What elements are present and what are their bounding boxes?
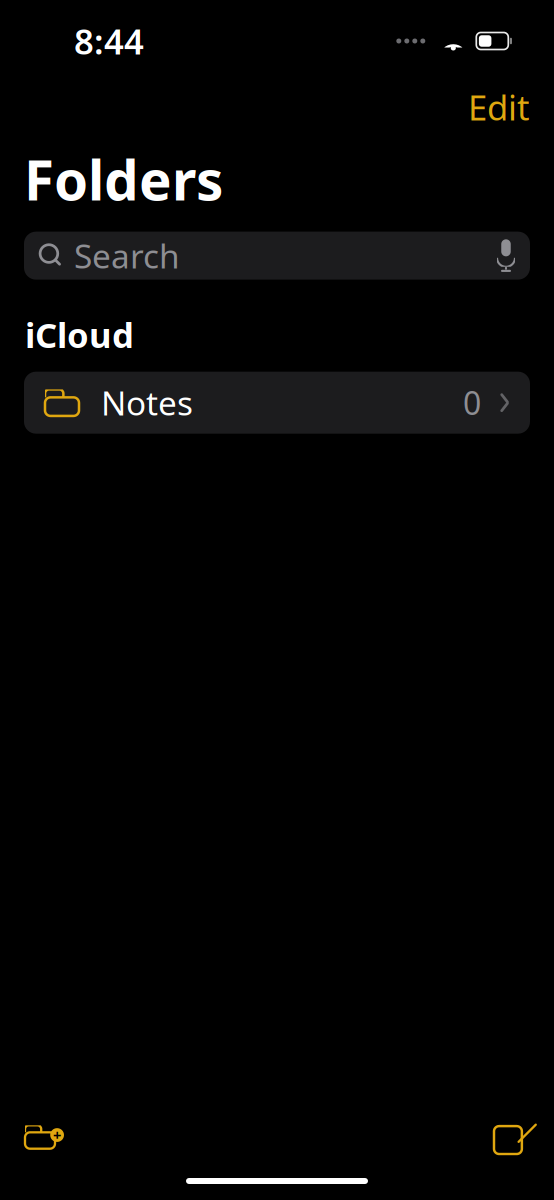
staticText: Notes [101,380,193,425]
staticText: Edit [468,84,530,130]
staticText: 8:44 [74,18,144,64]
button[interactable]: New Note [485,1111,537,1163]
button[interactable]: Notes [24,372,530,434]
button[interactable]: New Folder [15,1114,74,1160]
staticText: iCloud [25,312,134,358]
staticText: Folders [24,143,223,216]
staticText: Search [74,233,180,278]
staticText: + [53,1125,61,1145]
staticText: 0 [463,381,481,424]
button[interactable]: Search [24,232,530,280]
button[interactable]: Edit [456,77,542,137]
